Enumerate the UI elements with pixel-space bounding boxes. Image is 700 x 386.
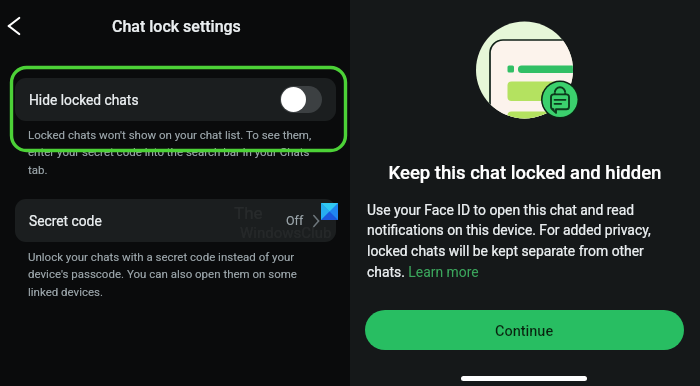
staticText: Use your Face ID to open this chat and r… [367, 202, 657, 281]
staticText: Continue [495, 323, 554, 340]
staticText: Hide locked chats [29, 92, 139, 108]
staticText: The [234, 203, 263, 223]
staticText: Chat lock settings [112, 17, 241, 36]
button[interactable]: Back [0, 11, 29, 41]
staticText: Off [286, 213, 304, 228]
staticText: Locked chats won't show on your chat lis… [28, 128, 320, 177]
staticText: Secret code [29, 213, 102, 229]
button[interactable]: Continue [365, 310, 684, 350]
staticText: Keep this chat locked and hidden [350, 162, 700, 184]
staticText: WindowsClub [240, 224, 332, 242]
button[interactable]: Secret code [15, 199, 336, 242]
staticText: Unlock your chats with a secret code ins… [28, 250, 308, 299]
button[interactable]: Hide locked chats [15, 78, 336, 121]
